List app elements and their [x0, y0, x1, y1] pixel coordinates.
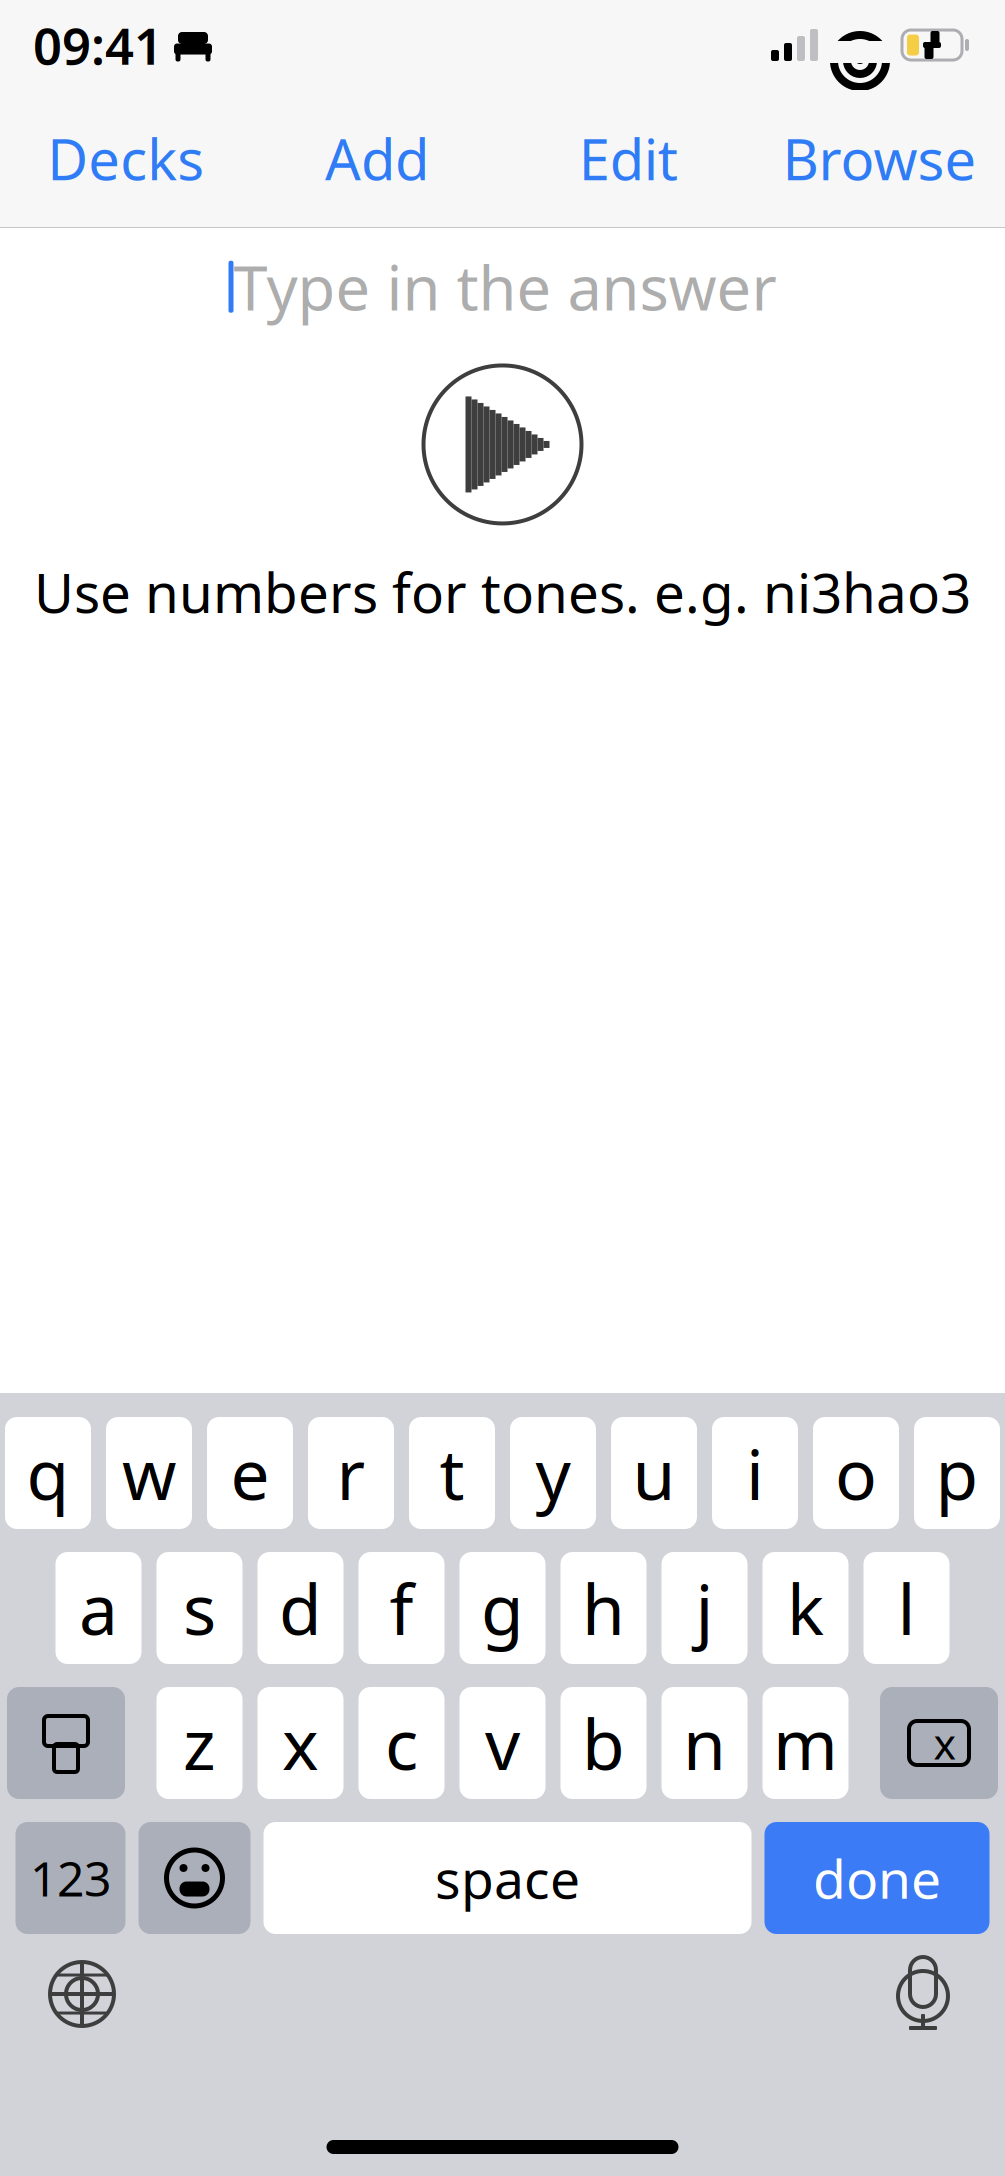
staticText: d	[279, 1562, 322, 1654]
staticText: z	[183, 1697, 216, 1789]
button[interactable]: f	[358, 1552, 444, 1664]
button[interactable]: x	[257, 1687, 343, 1799]
button[interactable]: 123	[15, 1822, 125, 1934]
staticText: b	[582, 1697, 625, 1789]
staticText: n	[683, 1697, 726, 1789]
staticText: s	[183, 1562, 216, 1654]
staticText: k	[787, 1562, 824, 1654]
staticText: Browse	[782, 121, 976, 196]
staticText: Edit	[579, 121, 678, 196]
button[interactable]: Decks	[0, 90, 251, 227]
button[interactable]: Browse	[754, 90, 1005, 227]
staticText: q	[26, 1427, 69, 1519]
button[interactable]: Dictation	[877, 1948, 969, 2040]
button[interactable]: t	[409, 1417, 495, 1529]
staticText: g	[481, 1562, 524, 1654]
staticText: c	[385, 1697, 418, 1789]
button[interactable]: u	[611, 1417, 697, 1529]
staticText: space	[435, 1843, 580, 1913]
staticText: r	[336, 1427, 365, 1519]
staticText: 09:41	[33, 11, 163, 79]
button[interactable]: c	[358, 1687, 444, 1799]
button[interactable]: o	[813, 1417, 899, 1529]
staticText: j	[695, 1562, 713, 1654]
button[interactable]: Add	[251, 90, 502, 227]
button[interactable]: g	[459, 1552, 545, 1664]
staticText: l	[897, 1562, 915, 1654]
button[interactable]: Emoji	[138, 1822, 250, 1934]
button[interactable]: d	[257, 1552, 343, 1664]
staticText: a	[79, 1562, 118, 1654]
button[interactable]: Edit	[502, 90, 754, 227]
button[interactable]: Next keyboard	[36, 1948, 128, 2040]
button[interactable]: Play audio	[423, 365, 581, 523]
button[interactable]: Delete	[880, 1687, 998, 1799]
button[interactable]: p	[914, 1417, 1000, 1529]
button[interactable]: n	[661, 1687, 747, 1799]
staticText: m	[773, 1697, 838, 1789]
staticText: e	[230, 1427, 269, 1519]
button[interactable]: q	[5, 1417, 91, 1529]
button[interactable]: r	[308, 1417, 394, 1529]
staticText: Decks	[47, 121, 204, 196]
button[interactable]: m	[762, 1687, 848, 1799]
staticText: x	[933, 1715, 956, 1771]
staticText: p	[935, 1427, 978, 1519]
staticText: t	[439, 1427, 464, 1519]
staticText: done	[813, 1843, 941, 1913]
staticText: Add	[325, 121, 429, 196]
staticText: h	[582, 1562, 625, 1654]
button[interactable]: b	[560, 1687, 646, 1799]
staticText: 123	[30, 1846, 111, 1910]
staticText: v	[485, 1697, 520, 1789]
button[interactable]: l	[863, 1552, 949, 1664]
staticText: u	[632, 1427, 675, 1519]
button[interactable]: s	[156, 1552, 242, 1664]
button[interactable]: z	[156, 1687, 242, 1799]
staticText: Use numbers for tones. e.g. ni3hao3	[34, 555, 971, 628]
button[interactable]: Shift	[7, 1687, 125, 1799]
button[interactable]: i	[712, 1417, 798, 1529]
button[interactable]: space	[263, 1822, 751, 1934]
button[interactable]: a	[55, 1552, 141, 1664]
staticText: o	[835, 1427, 877, 1519]
button[interactable]: j	[661, 1552, 747, 1664]
button[interactable]: k	[762, 1552, 848, 1664]
staticText: f	[389, 1562, 413, 1654]
button[interactable]: v	[459, 1687, 545, 1799]
button[interactable]: done	[764, 1822, 989, 1934]
staticText: y	[535, 1427, 570, 1519]
button[interactable]: e	[207, 1417, 293, 1529]
button[interactable]: h	[560, 1552, 646, 1664]
staticText: x	[282, 1697, 319, 1789]
staticText: w	[122, 1427, 176, 1519]
staticText: i	[746, 1427, 764, 1519]
button[interactable]: w	[106, 1417, 192, 1529]
button[interactable]: y	[510, 1417, 596, 1529]
staticText: Type in the answer	[233, 246, 776, 327]
